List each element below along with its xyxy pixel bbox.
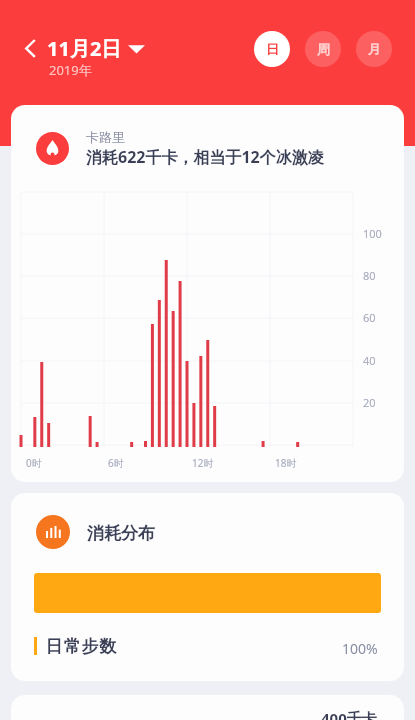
staticText: 40 bbox=[363, 353, 376, 368]
staticText: 400千卡 bbox=[321, 708, 377, 720]
staticText: 日常步数 bbox=[45, 636, 117, 657]
staticText: 100% bbox=[342, 639, 378, 658]
staticText: 100 bbox=[363, 226, 382, 241]
staticText: 消耗622千卡，相当于12个冰激凌 bbox=[86, 146, 324, 168]
staticText: 2019年 bbox=[49, 61, 92, 79]
button[interactable]: 月 bbox=[356, 31, 392, 67]
staticText: 18时 bbox=[275, 456, 297, 470]
button[interactable]: 周 bbox=[305, 31, 341, 67]
staticText: 60 bbox=[363, 310, 376, 325]
staticText: 80 bbox=[363, 268, 376, 283]
staticText: 12时 bbox=[192, 456, 214, 470]
staticText: 月 bbox=[368, 41, 381, 57]
staticText: 11月2日 bbox=[47, 35, 122, 62]
staticText: 20 bbox=[363, 395, 376, 410]
staticText: 周 bbox=[317, 41, 330, 57]
staticText: 卡路里 bbox=[86, 129, 125, 145]
button[interactable]: 日 bbox=[254, 31, 290, 67]
button[interactable]: Back bbox=[15, 32, 47, 64]
staticText: 0时 bbox=[26, 456, 42, 470]
staticText: 日 bbox=[266, 41, 279, 57]
staticText: 消耗分布 bbox=[87, 523, 155, 544]
staticText: 6时 bbox=[108, 456, 124, 470]
